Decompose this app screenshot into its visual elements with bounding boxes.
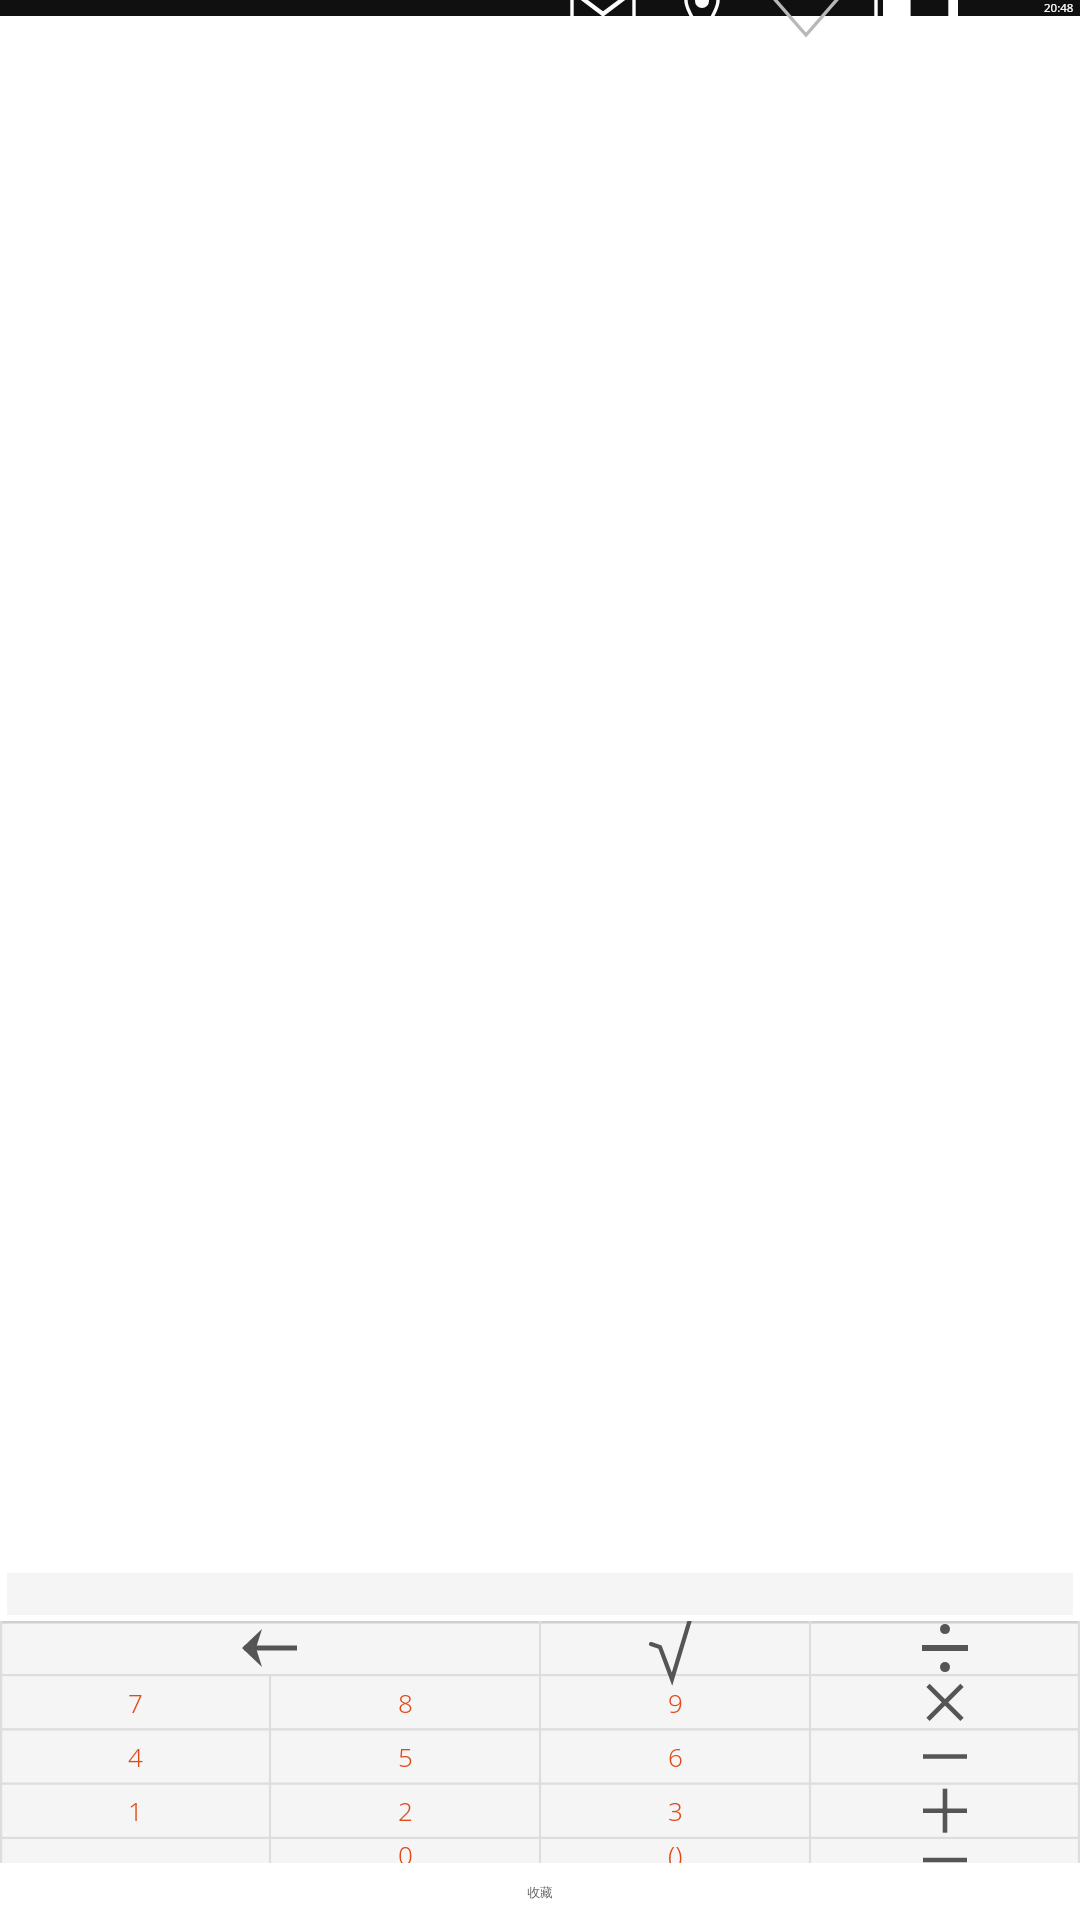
staticText: 收藏	[527, 1884, 553, 1900]
staticText: ()	[668, 1837, 683, 1863]
button[interactable]: 1	[0, 1783, 270, 1837]
staticText: 5	[398, 1739, 413, 1774]
button[interactable]: 3	[540, 1783, 810, 1837]
button[interactable]: 5	[270, 1729, 540, 1783]
button[interactable]: 7	[0, 1675, 270, 1729]
staticText: 6	[668, 1739, 683, 1774]
button[interactable]: 6	[540, 1729, 810, 1783]
button[interactable]: 2	[270, 1783, 540, 1837]
staticText: 9	[668, 1685, 683, 1720]
button[interactable]: Divide	[810, 1621, 1080, 1675]
staticText: 20:48	[1044, 0, 1074, 16]
staticText: 3	[668, 1793, 683, 1828]
button[interactable]: Backspace	[0, 1621, 540, 1675]
button[interactable]: 4	[0, 1729, 270, 1783]
button[interactable]: 0	[270, 1837, 540, 1863]
button[interactable]: Multiply	[810, 1675, 1080, 1729]
staticText: 4	[128, 1739, 143, 1774]
button[interactable]: 9	[540, 1675, 810, 1729]
button[interactable]: 收藏	[0, 1863, 1080, 1920]
staticText: 2	[398, 1793, 413, 1828]
button[interactable]: Equals	[810, 1837, 1080, 1863]
staticText: 1	[128, 1793, 143, 1828]
button[interactable]: Subtract	[810, 1729, 1080, 1783]
button[interactable]: Key	[0, 1837, 270, 1863]
button[interactable]: ()	[540, 1837, 810, 1863]
staticText: 0	[398, 1837, 413, 1863]
staticText: 8	[398, 1685, 413, 1720]
button[interactable]: Square root	[540, 1621, 810, 1675]
button[interactable]: 8	[270, 1675, 540, 1729]
staticText: 7	[128, 1685, 143, 1720]
button[interactable]: Add	[810, 1783, 1080, 1837]
